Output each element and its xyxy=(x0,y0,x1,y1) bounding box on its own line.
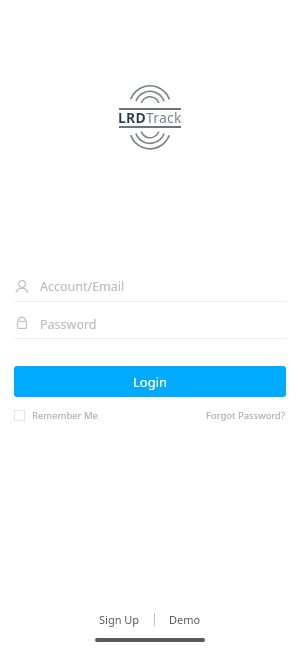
other: Password xyxy=(14,316,30,332)
button[interactable]: Login xyxy=(14,366,286,397)
button[interactable]: Remember Me xyxy=(14,409,98,422)
staticText: Password xyxy=(40,316,97,333)
button[interactable]: Password xyxy=(14,310,286,338)
staticText: Account/Email xyxy=(40,278,125,295)
button[interactable]: Account xyxy=(14,272,286,301)
staticText: Sign Up xyxy=(99,612,140,627)
staticText: Track xyxy=(146,108,182,127)
staticText: LRD xyxy=(118,108,146,127)
other: Account xyxy=(14,279,30,295)
staticText: Demo xyxy=(169,612,201,627)
button[interactable]: Sign Up xyxy=(93,610,146,629)
button[interactable]: Demo xyxy=(163,610,207,629)
staticText: Forgot Password? xyxy=(206,409,286,422)
staticText: Login xyxy=(133,373,168,391)
staticText: Remember Me xyxy=(32,409,98,422)
button[interactable]: Forgot Password? xyxy=(206,409,286,422)
